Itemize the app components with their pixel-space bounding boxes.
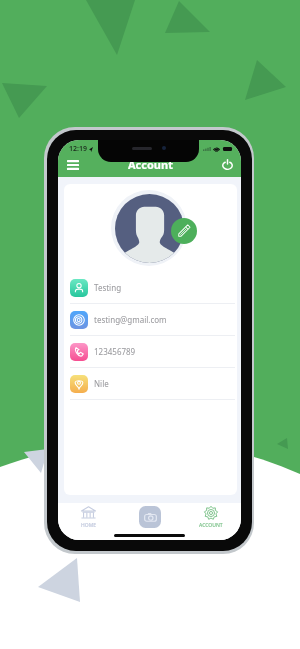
- button[interactable]: Testing: [64, 272, 237, 304]
- button[interactable]: HOME: [58, 506, 119, 529]
- button[interactable]: Menu: [58, 152, 88, 177]
- staticText: 123456789: [94, 346, 136, 357]
- staticText: ACCOUNT: [199, 522, 223, 529]
- button[interactable]: 123456789: [64, 336, 237, 368]
- button[interactable]: ACCOUNT: [180, 506, 241, 529]
- button[interactable]: Power: [213, 152, 241, 177]
- staticText: 12:19: [69, 144, 87, 154]
- button[interactable]: Nile: [64, 368, 237, 400]
- button[interactable]: Edit profile: [171, 218, 197, 244]
- button[interactable]: testing@gmail.com: [64, 304, 237, 336]
- staticText: Account: [128, 157, 173, 172]
- button[interactable]: Camera: [139, 506, 161, 528]
- staticText: testing@gmail.com: [94, 314, 167, 325]
- staticText: HOME: [81, 522, 97, 529]
- staticText: Testing: [94, 282, 122, 293]
- staticText: Nile: [94, 378, 109, 389]
